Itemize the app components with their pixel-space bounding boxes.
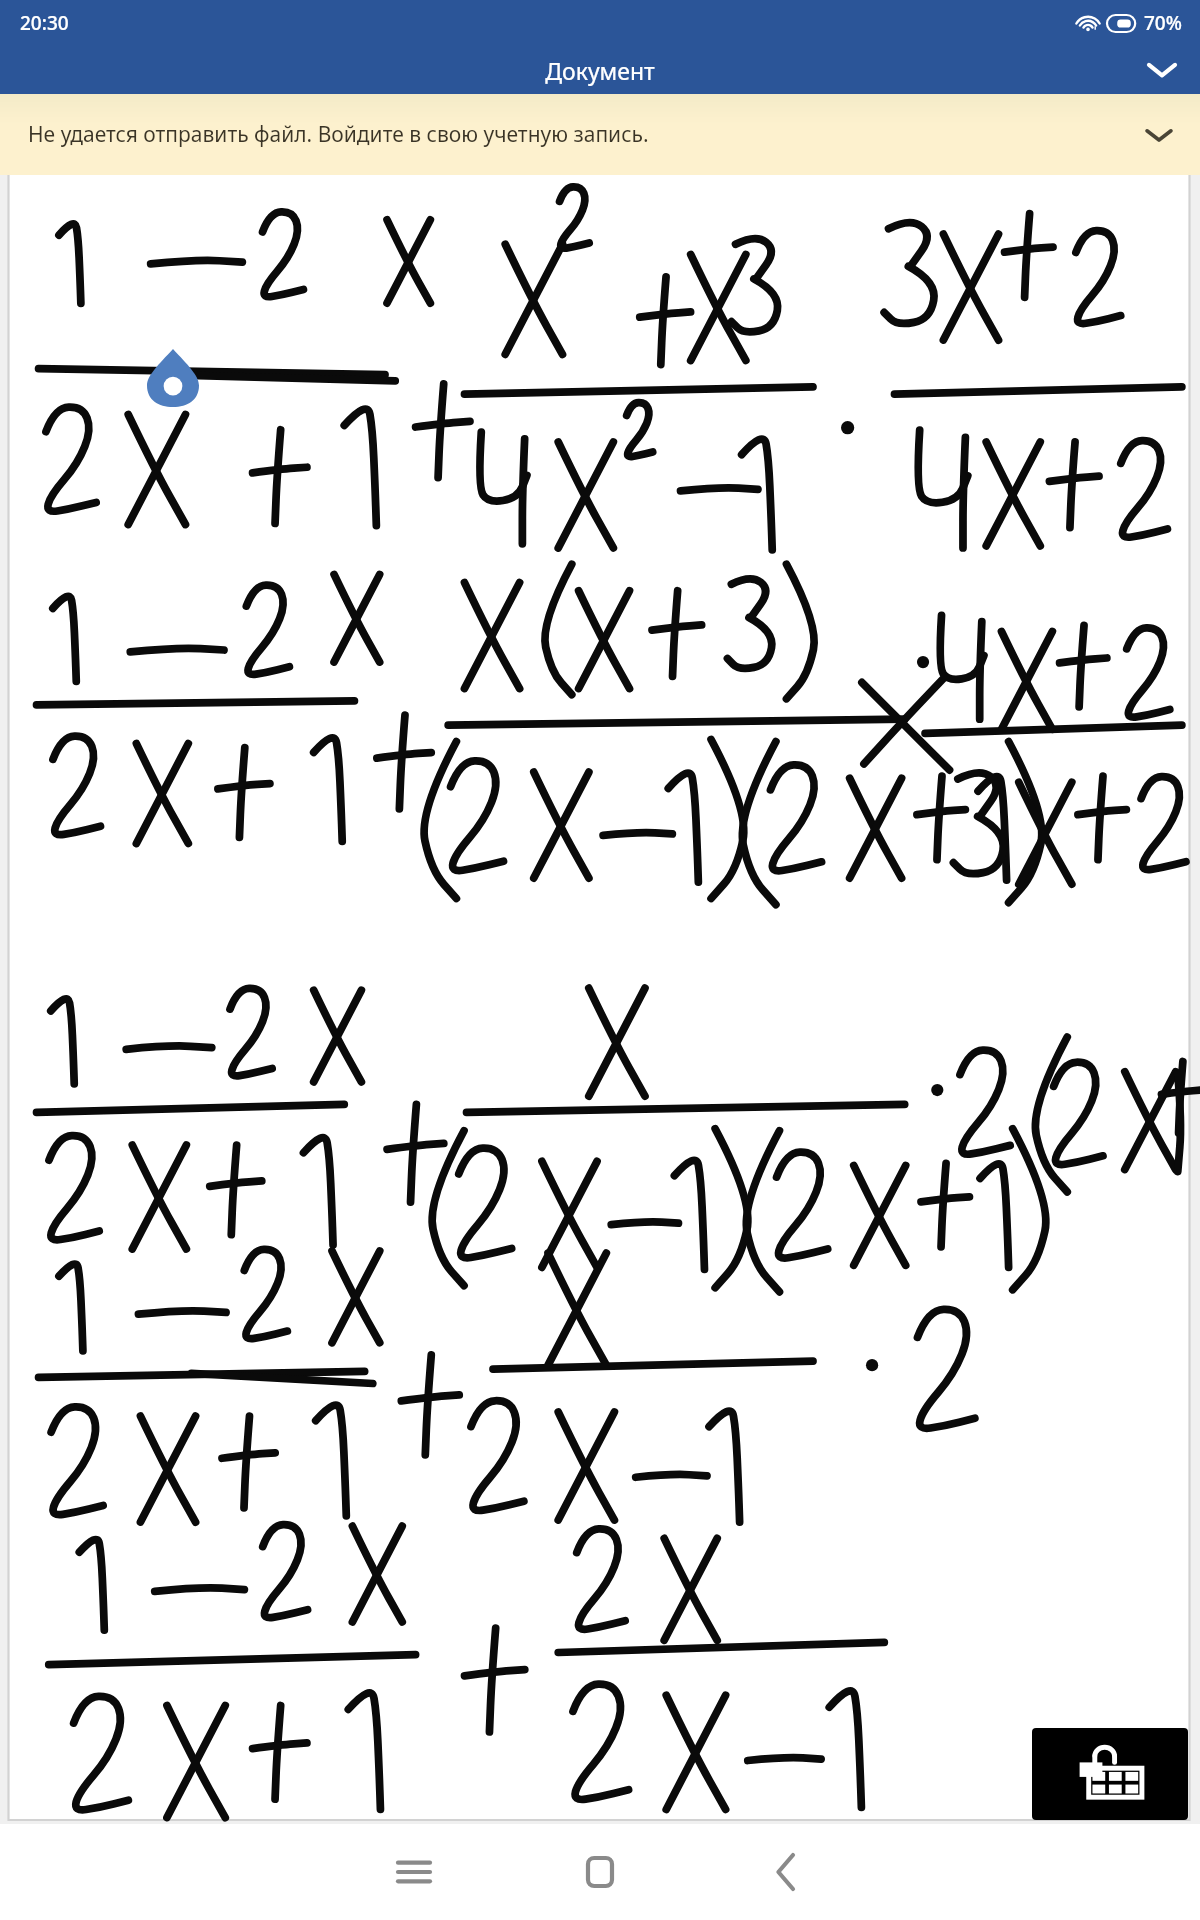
button[interactable]: Назад xyxy=(711,1824,861,1920)
button[interactable]: Свернуть xyxy=(1134,46,1190,94)
staticText: Не удается отправить файл. Войдите в сво… xyxy=(28,120,649,149)
button[interactable]: Показать клавиатуру xyxy=(1032,1728,1188,1820)
button[interactable]: Не удается отправить файл. Войдите в сво… xyxy=(0,94,1200,175)
staticText: Документ xyxy=(545,55,655,86)
button[interactable]: Меню xyxy=(339,1824,489,1920)
button[interactable]: Показать подробности xyxy=(1132,108,1186,162)
staticText: 20:30 xyxy=(20,10,69,36)
staticText: 70% xyxy=(1144,10,1182,36)
button[interactable]: Главный экран xyxy=(525,1824,675,1920)
button[interactable]: Маркер курсора xyxy=(147,349,199,407)
